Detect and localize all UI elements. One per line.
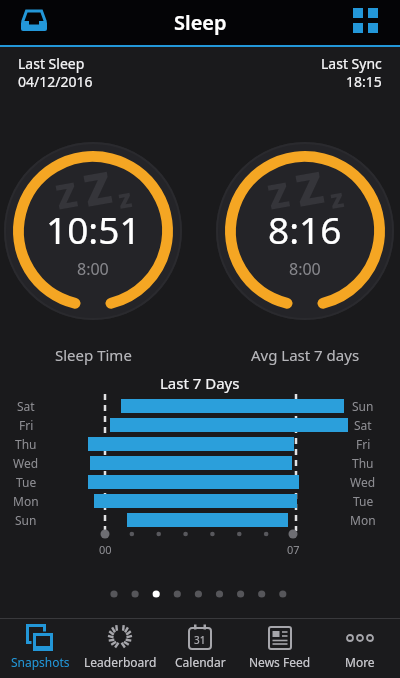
staticText: Tue <box>16 474 37 489</box>
button[interactable]: 31 <box>160 618 240 678</box>
staticText: Tue <box>353 493 374 508</box>
staticText: Fri <box>356 436 371 451</box>
staticText: 00 <box>99 542 112 557</box>
button[interactable] <box>344 4 386 41</box>
staticText: Wed <box>350 474 376 489</box>
staticText: Sat <box>354 417 372 432</box>
staticText: Mon <box>13 493 39 508</box>
staticText: 8:00 <box>77 258 109 280</box>
staticText: Sleep Time <box>55 345 132 365</box>
staticText: Snapshots <box>11 654 70 670</box>
staticText: Sun <box>15 512 37 527</box>
staticText: Sat <box>17 398 35 413</box>
staticText: Mon <box>350 512 376 527</box>
staticText: Z <box>264 170 293 219</box>
staticText: Thu <box>352 455 374 470</box>
staticText: Wed <box>13 455 39 470</box>
staticText: Sun <box>352 398 374 413</box>
staticText: 18:15 <box>346 72 382 91</box>
staticText: 07 <box>287 542 300 557</box>
button[interactable]: Leaderboard <box>80 618 160 678</box>
staticText: More <box>345 654 375 670</box>
staticText: 8:16 <box>268 204 342 254</box>
staticText: 31 <box>194 633 206 647</box>
staticText: Last 7 Days <box>160 373 240 393</box>
button[interactable] <box>14 4 56 41</box>
staticText: 10:51 <box>46 204 141 254</box>
button[interactable]: Snapshots <box>0 618 80 678</box>
staticText: 8:00 <box>289 258 321 280</box>
button[interactable]: News Feed <box>240 618 320 678</box>
button[interactable]: More <box>320 618 400 678</box>
staticText: Fri <box>19 417 34 432</box>
staticText: Thu <box>15 436 37 451</box>
staticText: Last Sync <box>321 54 382 73</box>
staticText: 04/12/2016 <box>18 72 93 91</box>
staticText: Calendar <box>175 654 226 670</box>
staticText: Z <box>79 156 116 220</box>
staticText: z <box>327 179 347 216</box>
staticText: Z <box>291 156 328 220</box>
staticText: Z <box>52 170 81 219</box>
staticText: News Feed <box>249 654 311 670</box>
staticText: Avg Last 7 days <box>251 345 360 365</box>
staticText: z <box>115 179 135 216</box>
staticText: Sleep <box>174 9 227 36</box>
staticText: Leaderboard <box>84 654 157 670</box>
staticText: Last Sleep <box>18 54 85 73</box>
